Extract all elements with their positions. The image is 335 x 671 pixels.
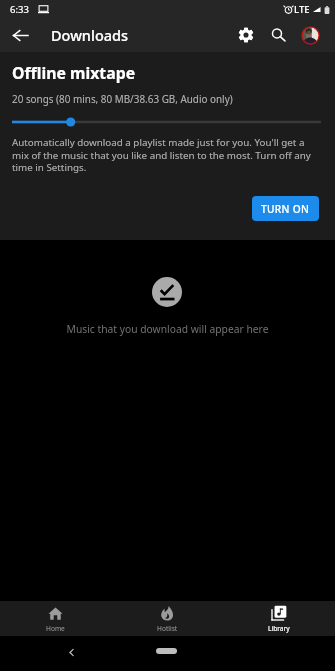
button[interactable]: Back (60, 641, 82, 663)
staticText: Home (46, 624, 65, 633)
staticText: TURN ON (261, 202, 310, 216)
staticText: Offline mixtape (12, 62, 136, 84)
staticText: Automatically download a playlist made j… (12, 136, 320, 173)
button[interactable]: Home (0, 601, 111, 636)
button[interactable]: Home (156, 648, 177, 654)
staticText: Music that you download will appear here (0, 322, 335, 336)
staticText: Hotlist (157, 624, 178, 633)
staticText: Downloads (51, 25, 129, 45)
staticText: 20 songs (80 mins, 80 MB/38.63 GB, Audio… (12, 92, 233, 105)
button[interactable]: Download size slider (0, 114, 335, 130)
staticText: LTE (294, 3, 310, 16)
button[interactable]: Account (294, 19, 326, 51)
staticText: 6:33 (10, 3, 29, 16)
button[interactable]: Back (4, 19, 36, 51)
button[interactable]: Search (262, 19, 294, 51)
button[interactable]: Library (223, 601, 335, 636)
staticText: Library (268, 624, 290, 633)
button[interactable]: Hotlist (111, 601, 223, 636)
button[interactable]: TURN ON (252, 196, 319, 221)
button[interactable]: Settings (230, 19, 262, 51)
